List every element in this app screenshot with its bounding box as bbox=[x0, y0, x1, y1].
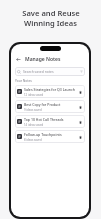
staticText: Manage Notes bbox=[25, 56, 61, 63]
button[interactable]: Delete note bbox=[77, 89, 83, 95]
staticText: Save and Reuse bbox=[22, 8, 80, 18]
staticText: Sales Strategies for Q3 Launch bbox=[24, 87, 75, 92]
staticText: Winning Ideas bbox=[24, 18, 77, 28]
staticText: 9 ideas saved bbox=[24, 108, 42, 112]
button[interactable]: Best Copy for Product Upselling bbox=[15, 100, 85, 113]
button[interactable]: Follow-up Touchpoints bbox=[15, 130, 85, 143]
staticText: 12 ideas saved bbox=[24, 93, 44, 97]
button[interactable]: Back bbox=[15, 56, 22, 63]
staticText: 8 ideas saved bbox=[24, 138, 42, 142]
staticText: Top 10 Hot Call Threads bbox=[24, 117, 64, 122]
button[interactable]: Delete note bbox=[77, 104, 83, 110]
button[interactable]: Top 10 Hot Call Threads bbox=[15, 115, 85, 128]
staticText: Your Notes bbox=[15, 79, 32, 83]
button[interactable]: Delete note bbox=[77, 119, 83, 125]
staticText: Follow-up Touchpoints bbox=[24, 132, 62, 137]
staticText: 14 ideas saved bbox=[24, 123, 44, 127]
staticText: Search saved notes bbox=[23, 69, 54, 74]
button[interactable]: Delete note bbox=[77, 134, 83, 140]
button[interactable]: Search saved notes bbox=[15, 67, 85, 76]
staticText: Best Copy for Product Upselling bbox=[24, 102, 76, 107]
button[interactable]: Sales Strategies for Q3 Launch bbox=[15, 85, 85, 98]
